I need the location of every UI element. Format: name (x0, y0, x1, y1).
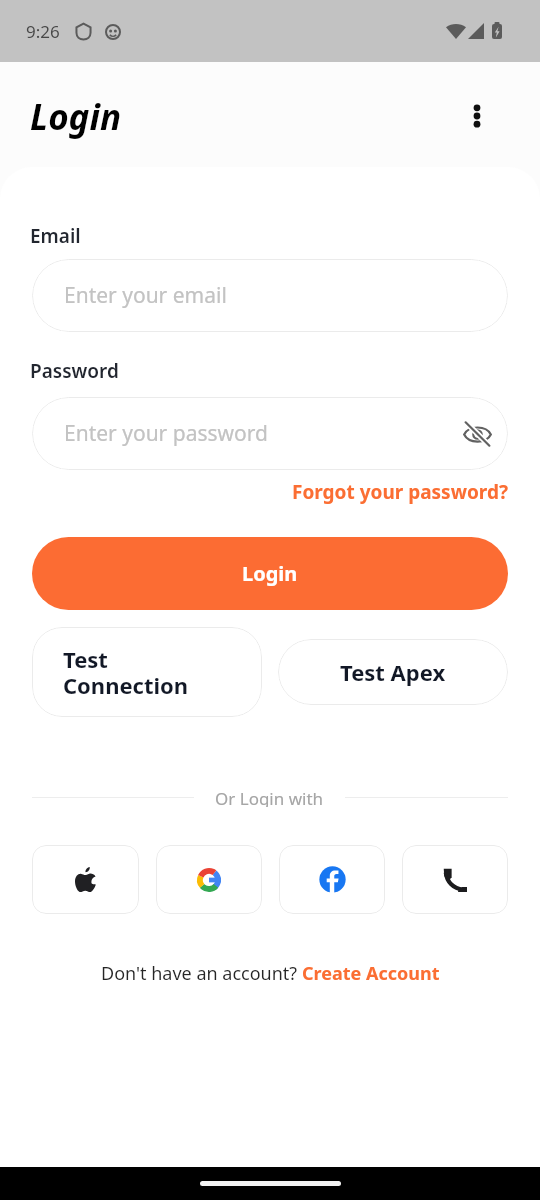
button[interactable]: Show password (459, 416, 495, 452)
button[interactable]: Sign in with Google (156, 845, 262, 914)
button[interactable]: Enter your email (32, 259, 508, 332)
staticText: Email (30, 223, 81, 249)
button[interactable]: Login (32, 537, 508, 610)
button[interactable]: Sign in with phone (402, 845, 508, 914)
staticText: Or Login with (215, 787, 324, 807)
staticText: 9:26 (26, 20, 60, 43)
button[interactable]: More options (465, 104, 489, 128)
staticText: Enter your password (64, 419, 268, 448)
button[interactable]: Test Apex (278, 639, 508, 705)
button[interactable]: Enter your password (32, 397, 508, 470)
staticText: Login (242, 560, 298, 587)
staticText: Test Connection (63, 644, 189, 700)
staticText: Don't have an account? (101, 961, 302, 986)
button[interactable]: Sign in with Facebook (279, 845, 385, 914)
button[interactable]: Test Connection (32, 627, 262, 717)
button[interactable]: Sign in with Apple (32, 845, 139, 914)
staticText: Password (30, 358, 119, 384)
staticText: Enter your email (64, 281, 227, 310)
staticText: Login (30, 93, 122, 141)
button[interactable]: Forgot your password? (292, 479, 508, 505)
button[interactable]: Create Account (302, 961, 440, 986)
staticText: Test Apex (340, 657, 446, 687)
